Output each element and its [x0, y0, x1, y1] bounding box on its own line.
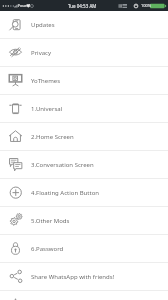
- button[interactable]: Rate us: [0, 291, 168, 300]
- button[interactable]: 6.Password: [0, 235, 168, 263]
- staticText: YoThemes: [31, 77, 61, 85]
- staticText: 2.Home Screen: [31, 133, 74, 141]
- button[interactable]: Privacy: [0, 39, 168, 67]
- button[interactable]: Share WhatsApp with friends!: [0, 263, 168, 291]
- staticText: Tue 04:53 AM: [68, 3, 97, 9]
- staticText: Privacy: [31, 49, 52, 57]
- staticText: 5.Other Mods: [31, 217, 70, 225]
- staticText: Share WhatsApp with friends!: [31, 273, 115, 281]
- staticText: 6.Password: [31, 245, 64, 253]
- button[interactable]: 2.Home Screen: [0, 123, 168, 151]
- button[interactable]: 4.Floating Action Button: [0, 179, 168, 207]
- button[interactable]: 5.Other Mods: [0, 207, 168, 235]
- button[interactable]: 3.Conversation Screen: [0, 151, 168, 179]
- staticText: Updates: [31, 21, 55, 29]
- staticText: Found: [18, 3, 30, 8]
- button[interactable]: YoThemes: [0, 67, 168, 95]
- staticText: 100%: [141, 3, 152, 8]
- staticText: 1.Universal: [31, 105, 63, 113]
- staticText: 4.Floating Action Button: [31, 189, 99, 197]
- button[interactable]: 1.Universal: [0, 95, 168, 123]
- button[interactable]: Updates: [0, 11, 168, 39]
- staticText: 3.Conversation Screen: [31, 161, 94, 169]
